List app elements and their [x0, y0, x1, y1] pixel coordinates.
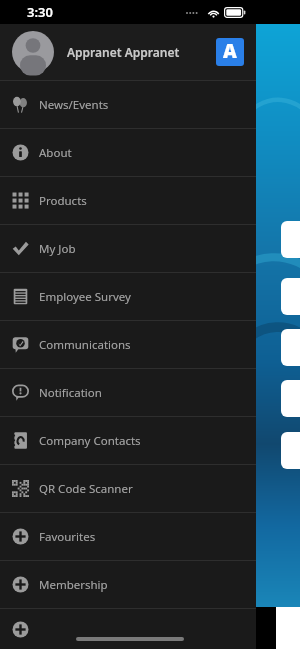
- button[interactable]: [281, 221, 300, 258]
- staticText: Notification: [39, 385, 102, 401]
- staticText: 3:30: [27, 3, 53, 21]
- staticText: Employee Survey: [39, 289, 131, 305]
- button[interactable]: App logo: [216, 38, 244, 66]
- staticText: About: [39, 145, 72, 161]
- button[interactable]: [281, 432, 300, 469]
- button[interactable]: Appranet Appranet: [0, 24, 256, 80]
- button[interactable]: Company Contacts: [0, 417, 256, 464]
- button[interactable]: [0, 609, 256, 649]
- button[interactable]: QR Code Scanner: [0, 465, 256, 512]
- button[interactable]: News/Events: [0, 81, 256, 128]
- button[interactable]: About: [0, 129, 256, 176]
- staticText: Company Contacts: [39, 433, 141, 449]
- staticText: Appranet Appranet: [67, 44, 180, 60]
- staticText: QR Code Scanner: [39, 481, 133, 497]
- button[interactable]: My Job: [0, 225, 256, 272]
- button[interactable]: Communications: [0, 321, 256, 368]
- button[interactable]: [281, 278, 300, 315]
- button[interactable]: Notification: [0, 369, 256, 416]
- staticText: Membership: [39, 577, 108, 593]
- button[interactable]: Favourites: [0, 513, 256, 560]
- staticText: Communications: [39, 337, 131, 353]
- staticText: News/Events: [39, 97, 109, 113]
- button[interactable]: Employee Survey: [0, 273, 256, 320]
- button[interactable]: [281, 329, 300, 366]
- button[interactable]: Products: [0, 177, 256, 224]
- button[interactable]: Membership: [0, 561, 256, 608]
- staticText: Favourites: [39, 529, 96, 545]
- button[interactable]: [281, 380, 300, 417]
- staticText: My Job: [39, 241, 76, 257]
- staticText: A: [223, 38, 237, 64]
- staticText: Products: [39, 193, 87, 209]
